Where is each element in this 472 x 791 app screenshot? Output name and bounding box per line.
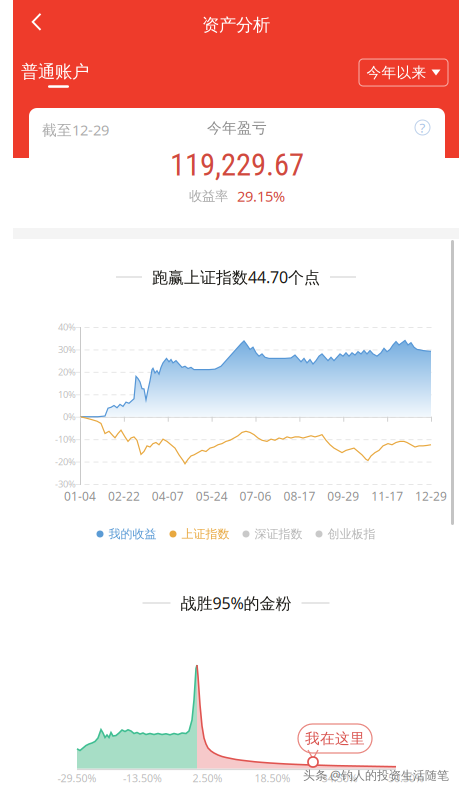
- button[interactable]: 今年以来: [359, 59, 448, 86]
- staticText: 34.50%: [322, 771, 358, 785]
- staticText: 08-17: [283, 488, 315, 504]
- staticText: 上证指数: [181, 527, 229, 541]
- staticText: 11-17: [371, 488, 403, 504]
- staticText: 07-06: [239, 488, 271, 504]
- staticText: 50.50%: [388, 771, 424, 785]
- staticText: 我的收益: [108, 527, 156, 541]
- staticText: 资产分析: [202, 14, 270, 36]
- staticText: 战胜95%的金粉: [180, 592, 291, 614]
- button[interactable]: 返回: [17, 2, 57, 42]
- staticText: -20%: [55, 455, 76, 468]
- staticText: 02-22: [108, 488, 140, 504]
- staticText: 普通账户: [21, 61, 89, 82]
- staticText: 09-29: [327, 488, 359, 504]
- staticText: 01-04: [64, 488, 96, 504]
- staticText: -30%: [55, 478, 76, 490]
- staticText: 119,229.67: [170, 147, 304, 183]
- staticText: ?: [419, 119, 425, 136]
- staticText: 29.15%: [237, 186, 285, 206]
- button[interactable]: 我的收益: [96, 527, 156, 541]
- staticText: -10%: [55, 433, 76, 445]
- button[interactable]: 深证指数: [242, 527, 302, 541]
- staticText: -29.50%: [57, 771, 96, 785]
- staticText: 40%: [58, 321, 76, 333]
- staticText: 深证指数: [254, 527, 302, 541]
- staticText: 18.50%: [255, 771, 291, 785]
- staticText: -13.50%: [123, 771, 162, 785]
- staticText: 截至12-29: [42, 120, 109, 139]
- button[interactable]: 我在这里: [298, 724, 372, 753]
- staticText: 我在这里: [305, 729, 365, 747]
- staticText: 04-07: [152, 488, 184, 504]
- staticText: 今年以来: [366, 63, 426, 81]
- staticText: 12-29: [415, 488, 447, 504]
- button[interactable]: 创业板指: [315, 527, 375, 541]
- staticText: 头条 @钓人的投资生活随笔: [303, 767, 449, 783]
- button[interactable]: 上证指数: [169, 527, 229, 541]
- staticText: 20%: [58, 366, 76, 378]
- staticText: 收益率: [189, 188, 228, 204]
- staticText: 30%: [58, 343, 76, 356]
- staticText: 05-24: [196, 488, 228, 504]
- button[interactable]: 普通账户: [13, 58, 103, 92]
- staticText: 创业板指: [327, 527, 375, 541]
- staticText: 0%: [63, 410, 76, 423]
- button[interactable]: 说明: [415, 120, 430, 135]
- staticText: 2.50%: [192, 771, 222, 785]
- staticText: 今年盈亏: [207, 119, 267, 137]
- staticText: 跑赢上证指数44.70个点: [152, 266, 320, 288]
- staticText: 10%: [58, 388, 76, 400]
